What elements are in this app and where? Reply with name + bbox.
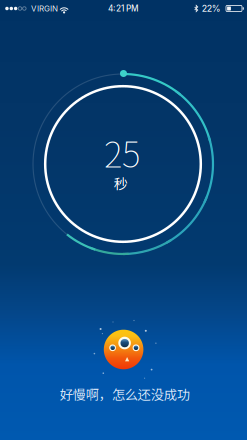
staticText: 22% (202, 3, 221, 14)
staticText: 好慢啊，怎么还没成功 (60, 384, 190, 404)
staticText: 25 (104, 126, 140, 178)
staticText: 秒 (114, 173, 128, 193)
staticText: VIRGIN (31, 4, 58, 13)
staticText: 4:21 PM (108, 3, 139, 13)
